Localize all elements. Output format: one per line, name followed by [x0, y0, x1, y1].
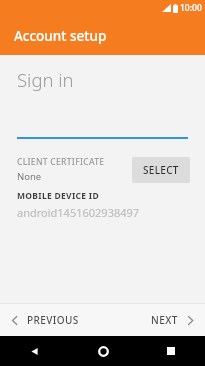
staticText: Sign in	[17, 67, 74, 92]
button[interactable]: Home	[69, 336, 137, 366]
staticText: SELECT	[143, 163, 179, 177]
button[interactable]: Back	[0, 336, 69, 366]
staticText: android1451602938497	[17, 205, 140, 220]
button[interactable]: SELECT	[132, 157, 190, 183]
staticText: NEXT	[151, 313, 178, 327]
staticText: Account setup	[14, 27, 107, 45]
button[interactable]: NEXT	[151, 304, 205, 336]
staticText: 10:00	[180, 2, 202, 14]
button[interactable]: Recent apps	[137, 336, 205, 366]
staticText: CLIENT CERTIFICATE	[17, 156, 105, 168]
staticText: MOBILE DEVICE ID	[17, 190, 99, 202]
staticText: None	[17, 170, 42, 183]
button[interactable]: PREVIOUS	[0, 304, 151, 336]
staticText: PREVIOUS	[27, 313, 79, 327]
button[interactable]	[17, 125, 188, 139]
